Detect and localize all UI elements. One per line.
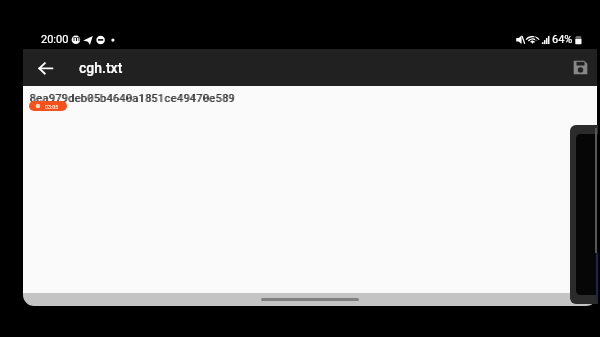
button[interactable]: cgh.txt — [79, 60, 123, 76]
button[interactable]: Floating window — [570, 125, 598, 304]
button[interactable]: Home — [261, 298, 359, 301]
button[interactable]: Recording timer — [29, 101, 67, 111]
button[interactable]: Save — [567, 54, 594, 81]
staticText: 8ea979deb05b4640a1851ce49470e589 — [29, 91, 235, 105]
staticText: 8ea979deb05b4640a1851ce49470e589 — [30, 91, 236, 105]
button[interactable]: Navigate up — [33, 54, 60, 81]
staticText: 64% — [552, 33, 573, 46]
staticText: m — [73, 34, 80, 43]
staticText: 03:05 — [45, 104, 59, 110]
staticText: 20:00 — [41, 33, 69, 46]
